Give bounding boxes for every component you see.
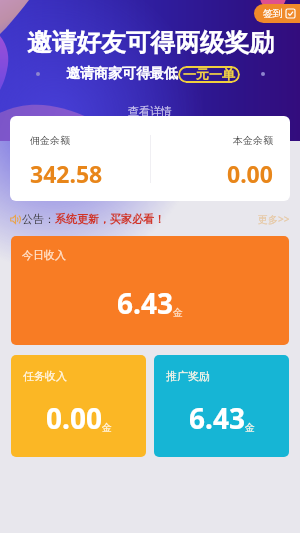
staticText: 6.43: [189, 399, 245, 437]
staticText: 0.00: [46, 399, 102, 437]
staticText: 一元一单: [183, 66, 235, 82]
staticText: 今日收入: [22, 248, 66, 262]
staticText: 推广奖励: [166, 369, 210, 383]
staticText: 邀请好友可得两级奖励: [27, 27, 274, 58]
button[interactable]: 签到: [254, 4, 300, 23]
staticText: 金: [102, 421, 112, 434]
staticText: 更多>>: [258, 212, 290, 226]
staticText: 金: [173, 306, 183, 319]
staticText: 任务收入: [23, 369, 67, 383]
button[interactable]: 公告：: [0, 209, 300, 229]
button[interactable]: 任务收入: [11, 355, 146, 457]
staticText: 佣金余额: [30, 134, 70, 147]
button[interactable]: 今日收入: [11, 236, 289, 345]
staticText: 6.43: [117, 284, 173, 322]
staticText: 本金余额: [233, 134, 273, 147]
button[interactable]: 本金余额: [150, 116, 290, 201]
button[interactable]: 查看详情: [120, 103, 180, 119]
staticText: 金: [245, 421, 255, 434]
staticText: 342.58: [30, 158, 103, 189]
staticText: 公告：: [22, 212, 55, 226]
staticText: 系统更新，买家必看！: [55, 212, 165, 226]
button[interactable]: 推广奖励: [154, 355, 289, 457]
staticText: 签到: [263, 7, 283, 20]
staticText: 邀请商家可得最低: [66, 65, 178, 83]
staticText: 0.00: [227, 158, 273, 189]
button[interactable]: 佣金余额: [10, 116, 150, 201]
staticText: 查看详情: [128, 104, 172, 118]
